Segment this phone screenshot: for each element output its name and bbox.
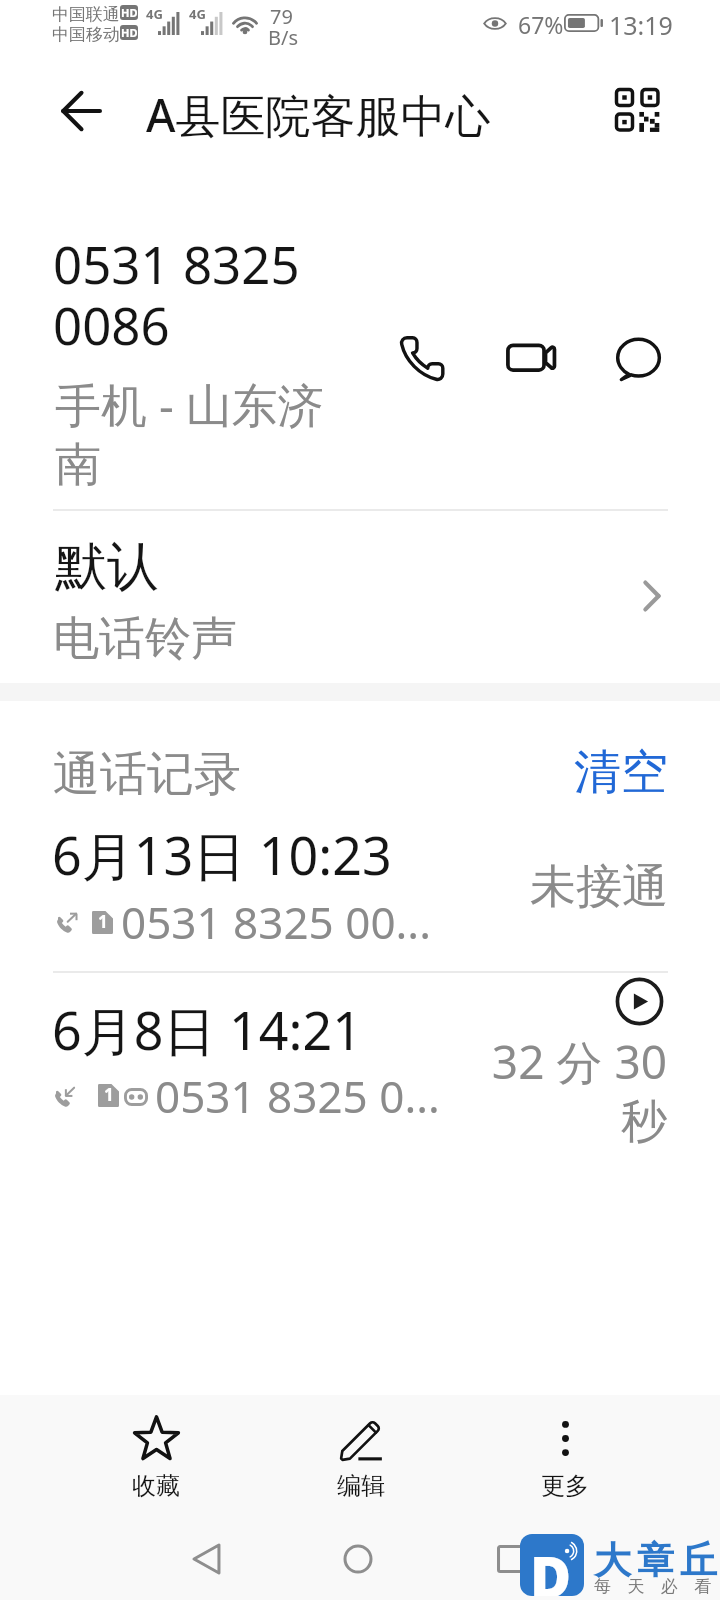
staticText: 电话铃声 [53,610,237,668]
staticText: 收藏 [132,1471,180,1501]
staticText: 中国移动 [52,24,120,45]
staticText: 4G [189,5,206,23]
staticText: 每 天 必 看 [594,1574,718,1597]
staticText: 1 [104,1083,114,1106]
staticText: 更多 [541,1471,589,1501]
staticText: 0531 8325 0086 [53,229,325,360]
staticText: 默认 [55,534,159,600]
staticText: 0531 8325 0... [155,1066,440,1126]
staticText: 0531 8325 00... [121,892,431,952]
staticText: 1 [98,910,108,933]
button[interactable]: Call [389,325,455,391]
button[interactable]: 编辑 [259,1395,463,1515]
staticText: 未接通 [530,858,668,916]
staticText: 通话记录 [53,745,241,804]
button[interactable]: Home [313,1516,403,1600]
button[interactable]: Message [604,324,670,390]
button[interactable]: 6月13日 10:23 [0,819,720,969]
button[interactable]: 更多 [463,1395,667,1515]
button[interactable]: 收藏 [54,1395,258,1515]
staticText: HD [121,25,138,40]
staticText: 67% [518,9,564,40]
button[interactable]: Play recording [606,968,672,1034]
staticText: 13:19 [609,8,673,42]
staticText: B/s [268,24,299,51]
button[interactable]: Scan QR code [604,77,672,145]
staticText: 6月13日 10:23 [52,819,392,890]
button[interactable]: 6月8日 14:21 [0,971,720,1151]
staticText: 32 分 30 秒 [470,1030,667,1151]
staticText: 清空 [574,743,668,802]
staticText: D [530,1538,572,1596]
staticText: A县医院客服中心 [146,84,491,145]
button[interactable]: Back [162,1516,252,1600]
button[interactable]: 默认 [0,510,720,683]
staticText: 79 [270,3,293,30]
staticText: 4G [146,5,163,23]
staticText: 手机 - 山东济南 [55,373,331,494]
staticText: 编辑 [337,1471,385,1501]
button[interactable]: Video call [498,324,564,390]
button[interactable]: Back [47,77,115,145]
button[interactable]: Recents [466,1516,556,1600]
staticText: 大章丘 [591,1537,720,1584]
staticText: HD [121,5,138,20]
button[interactable]: 清空 [574,743,668,802]
staticText: 中国联通 [52,4,120,25]
staticText: 6月8日 14:21 [52,994,362,1065]
